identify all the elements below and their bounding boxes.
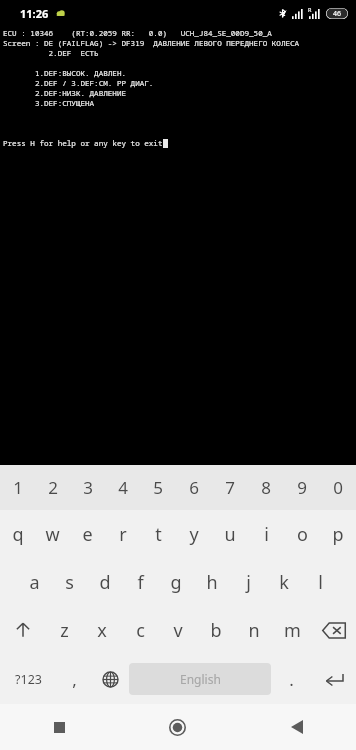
staticText: y [189,522,199,547]
staticText: q [12,522,24,547]
staticText: ECU : 10346 (RT:0.2059 RR: 0.0) UCH_J84_… [3,28,272,38]
button[interactable]: 4 [105,465,140,510]
staticText: g [170,570,182,595]
staticText: j [246,570,251,595]
button[interactable]: 7 [212,465,248,510]
staticText: 6 [189,476,199,499]
staticText: 2 [48,476,58,499]
staticText: R [308,6,312,13]
button[interactable]: . [271,654,311,704]
button[interactable]: e [70,510,105,558]
button[interactable]: 8 [248,465,284,510]
staticText: a [29,570,40,595]
button[interactable]: 2 [35,465,70,510]
button[interactable]: Backspace [311,606,356,654]
staticText: l [318,570,323,595]
staticText: d [99,570,111,595]
button[interactable]: c [121,606,159,654]
staticText: , [72,668,77,691]
button[interactable]: Recent apps [0,704,118,750]
button[interactable]: r [105,510,140,558]
staticText: 11:26 [20,6,49,21]
staticText: 5 [153,476,163,499]
staticText: 1 [13,476,23,499]
staticText: 4 [118,476,128,499]
staticText: 2.DEF ЕСТЬ [3,48,99,58]
button[interactable]: Change language [91,654,129,704]
button[interactable]: w [35,510,70,558]
button[interactable]: English [129,663,271,695]
staticText: f [137,570,144,595]
button[interactable]: , [57,654,91,704]
button[interactable]: q [0,510,35,558]
staticText: 3.DEF:СПУЩЕНА [3,98,95,108]
button[interactable]: j [230,558,266,606]
staticText: t [155,522,162,547]
staticText: v [173,618,183,643]
staticText: 46 [333,9,342,19]
button[interactable]: v [159,606,197,654]
button[interactable]: Enter [311,654,356,704]
button[interactable]: l [302,558,338,606]
staticText: 2.DEF:НИЗК. ДАВЛЕНИЕ [3,88,127,98]
staticText: Press H for help or any key to exit [3,138,163,148]
staticText: x [97,618,107,643]
button[interactable]: ?123 [0,654,57,704]
button[interactable]: 5 [140,465,176,510]
button[interactable]: m [273,606,311,654]
staticText: . [289,668,294,691]
button[interactable]: 3 [70,465,105,510]
button[interactable]: 1 [0,465,35,510]
staticText: 2.DEF / 3.DEF:СМ. РР ДИАГ. [3,78,154,88]
staticText: i [264,522,269,547]
button[interactable]: d [87,558,122,606]
staticText: h [206,570,218,595]
button[interactable]: z [45,606,83,654]
button[interactable]: k [266,558,302,606]
staticText: n [248,618,260,643]
staticText: m [284,618,301,643]
button[interactable]: h [194,558,230,606]
staticText: e [82,522,93,547]
staticText: p [332,522,344,547]
button[interactable]: p [320,510,356,558]
staticText: 9 [297,476,307,499]
button[interactable]: Back [237,704,356,750]
button[interactable]: i [248,510,284,558]
button[interactable]: a [17,558,52,606]
button[interactable]: Home [118,704,237,750]
button[interactable]: n [235,606,273,654]
staticText: 1.DEF:ВЫСОК. ДАВЛЕН. [3,68,127,78]
button[interactable]: 9 [284,465,320,510]
button[interactable]: 0 [320,465,356,510]
staticText: English [180,671,221,687]
staticText: z [60,618,69,643]
button[interactable]: Shift [0,606,45,654]
staticText: ?123 [15,671,42,688]
button[interactable]: t [140,510,176,558]
button[interactable]: g [158,558,194,606]
staticText: o [297,522,308,547]
button[interactable]: x [83,606,121,654]
staticText: w [45,522,60,547]
staticText: Screen : DE (FAILFLAG) -> DF319 ДАВЛЕНИЕ… [3,38,300,48]
button[interactable]: f [122,558,158,606]
staticText: s [65,570,74,595]
staticText: 0 [333,476,343,499]
staticText: r [119,522,127,547]
staticText: 3 [83,476,93,499]
button[interactable]: b [197,606,235,654]
staticText: k [279,570,289,595]
button[interactable]: 6 [176,465,212,510]
button[interactable]: y [176,510,212,558]
button[interactable]: o [284,510,320,558]
staticText: u [224,522,236,547]
staticText: b [210,618,222,643]
button[interactable]: u [212,510,248,558]
staticText: 8 [261,476,271,499]
button[interactable]: s [52,558,87,606]
